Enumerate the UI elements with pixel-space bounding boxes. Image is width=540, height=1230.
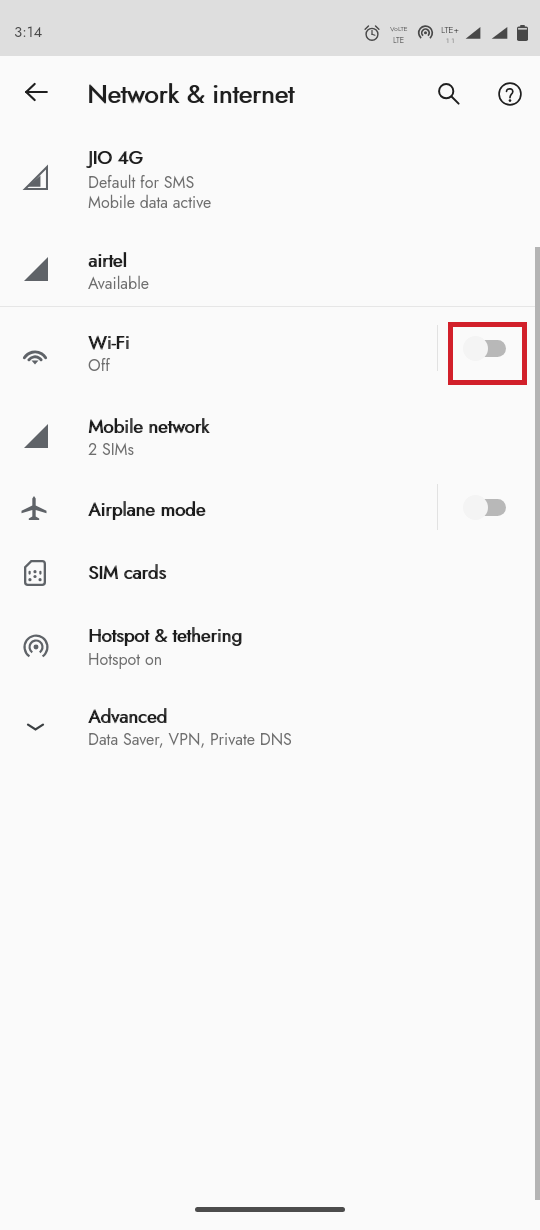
staticText: LTE bbox=[393, 34, 405, 46]
staticText: Hotspot on bbox=[88, 648, 163, 671]
staticText: Advanced bbox=[88, 703, 167, 730]
button[interactable]: SIM cards bbox=[0, 541, 540, 604]
button[interactable]: Toggle Airplane mode bbox=[450, 483, 518, 531]
button[interactable]: Hotspot & tethering bbox=[0, 604, 540, 684]
staticText: Network & internet bbox=[87, 75, 295, 113]
staticText: 2 SIMs bbox=[88, 438, 135, 461]
button[interactable]: Help bbox=[488, 72, 531, 115]
staticText: Off bbox=[88, 354, 110, 377]
staticText: JIO 4G bbox=[89, 144, 144, 171]
staticText: Available bbox=[88, 272, 150, 295]
staticText: LTE+ bbox=[441, 23, 460, 36]
button[interactable]: airtel bbox=[0, 228, 540, 306]
button[interactable]: Advanced bbox=[0, 684, 540, 765]
staticText: Mobile data active bbox=[88, 191, 212, 214]
staticText: SIM cards bbox=[88, 559, 166, 586]
staticText: Airplane mode bbox=[89, 496, 207, 523]
staticText: 3:14 bbox=[14, 21, 43, 43]
staticText: Default for SMS bbox=[88, 171, 195, 194]
staticText: airtel bbox=[88, 247, 127, 274]
staticText: 1 1 bbox=[446, 36, 455, 46]
staticText: Wi-Fi bbox=[89, 329, 131, 356]
staticText: Network & internet bbox=[88, 75, 296, 113]
staticText: Hotspot & tethering bbox=[89, 622, 243, 649]
button[interactable]: Wi-Fi bbox=[0, 307, 540, 390]
staticText: Data Saver, VPN, Private DNS bbox=[88, 728, 292, 751]
button[interactable]: Airplane mode bbox=[0, 473, 540, 541]
staticText: Hotspot & tethering bbox=[88, 622, 242, 649]
staticText: Airplane mode bbox=[88, 496, 206, 523]
staticText: SIM cards bbox=[89, 559, 167, 586]
staticText: airtel bbox=[89, 247, 128, 274]
staticText: Mobile network bbox=[88, 413, 209, 440]
button[interactable]: Search bbox=[427, 72, 470, 115]
button[interactable]: Mobile network bbox=[0, 390, 540, 473]
staticText: JIO 4G bbox=[88, 144, 143, 171]
staticText: Wi-Fi bbox=[88, 329, 130, 356]
staticText: Mobile network bbox=[89, 413, 210, 440]
staticText: Advanced bbox=[89, 703, 168, 730]
staticText: VoLTE bbox=[390, 24, 408, 34]
button[interactable]: JIO 4G bbox=[0, 130, 540, 228]
button[interactable]: Toggle Wi-Fi bbox=[450, 324, 518, 372]
button[interactable]: Back bbox=[14, 72, 57, 115]
